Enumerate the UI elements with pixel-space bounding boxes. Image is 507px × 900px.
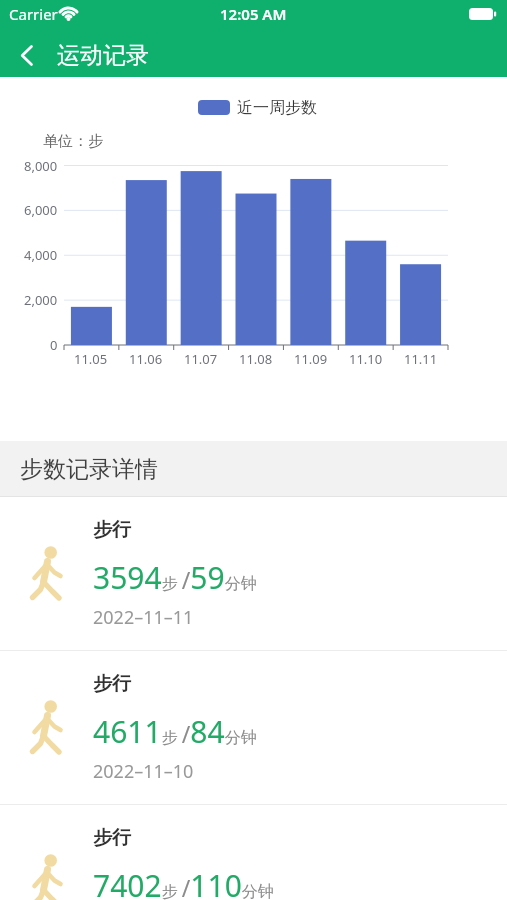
staticText: 8,000 [24,157,58,175]
button[interactable]: 步行 [0,651,507,805]
staticText: 运动记录 [57,41,149,70]
staticText: 近一周步数 [237,98,317,118]
staticText: 11.11 [404,350,438,368]
staticText: 4611步 /84分钟 [93,711,257,752]
staticText: 3594步 /59分钟 [93,557,257,598]
staticText: 11.08 [239,350,273,368]
button[interactable] [8,40,46,70]
button[interactable]: 步行 [0,805,507,900]
staticText: 2,000 [24,291,58,309]
staticText: 步行 [93,672,131,696]
staticText: 0 [50,336,58,354]
staticText: Carrier [9,4,58,24]
staticText: 11.06 [129,350,163,368]
staticText: 11.07 [184,350,218,368]
staticText: 2022–11–11 [93,605,194,630]
staticText: 2022–11–10 [93,759,194,784]
staticText: 11.10 [349,350,383,368]
staticText: 11.09 [294,350,328,368]
staticText: 步行 [93,826,131,850]
staticText: 4,000 [24,246,58,264]
staticText: 6,000 [24,201,58,219]
staticText: 11.05 [74,350,108,368]
staticText: 单位：步 [43,132,103,151]
staticText: 12:05 AM [220,4,287,24]
staticText: 7402步 /110分钟 [93,865,274,900]
staticText: 步行 [93,518,131,542]
button[interactable]: 步行 [0,497,507,651]
staticText: 步数记录详情 [20,455,158,484]
